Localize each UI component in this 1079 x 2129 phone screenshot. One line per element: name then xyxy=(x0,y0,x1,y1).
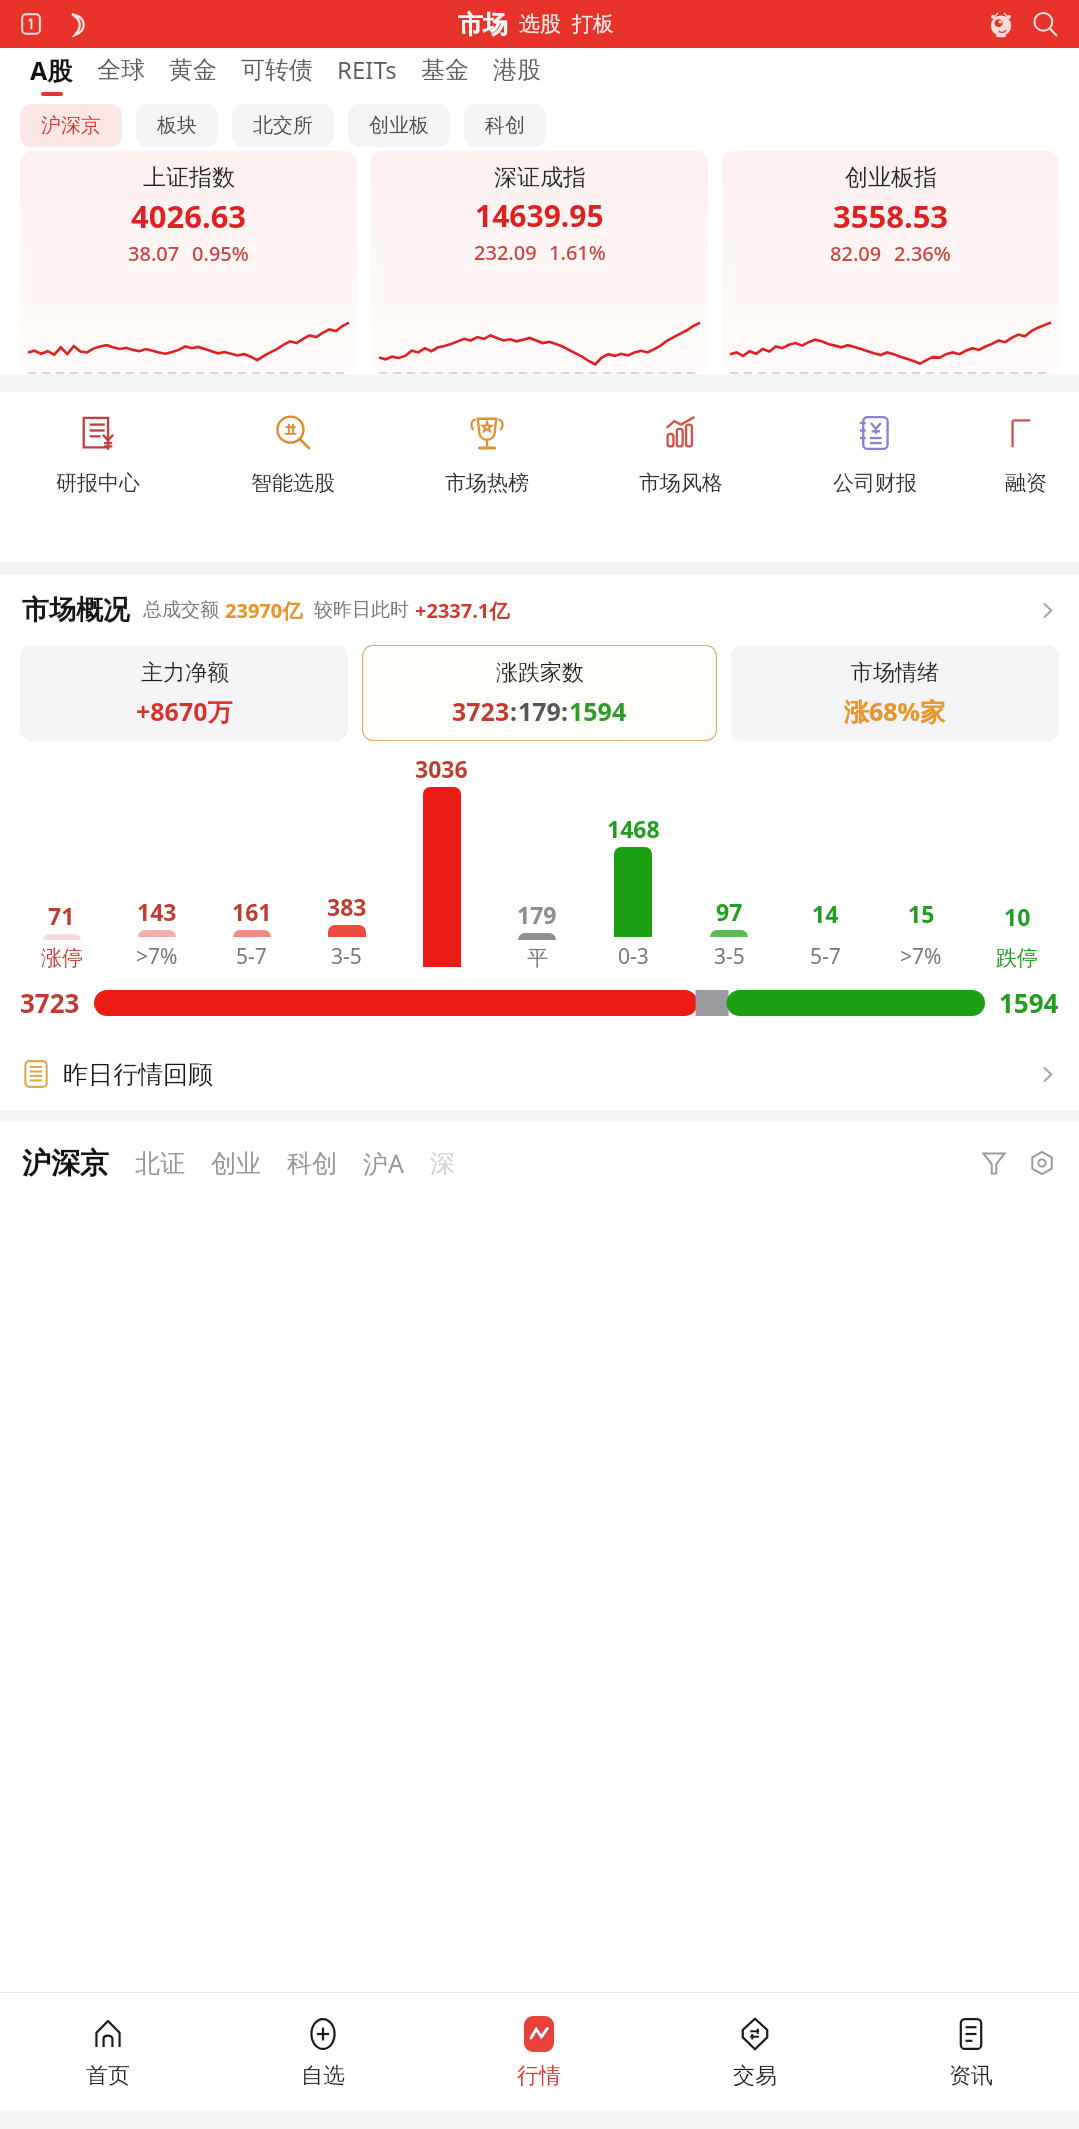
staticText: 公司财报 xyxy=(833,470,917,496)
staticText: 82.09 xyxy=(830,240,882,267)
staticText: 10 xyxy=(1004,901,1031,932)
staticText: >7% xyxy=(136,942,178,971)
staticText: 全球 xyxy=(97,55,145,85)
button[interactable]: 北证 xyxy=(135,1148,185,1179)
staticText: 179 xyxy=(517,899,557,930)
button[interactable]: 智能选股 xyxy=(195,410,390,496)
button[interactable]: 市场 xyxy=(458,9,508,40)
staticText: REITs xyxy=(337,53,397,86)
button[interactable]: 板块 xyxy=(136,104,218,147)
staticText: 深证成指 xyxy=(494,163,586,192)
staticText: 0-3 xyxy=(618,942,649,971)
button[interactable]: 沪深京 xyxy=(22,1145,109,1182)
button[interactable]: 基金 xyxy=(409,55,481,94)
staticText: 创业板指 xyxy=(845,163,937,192)
staticText: 71 xyxy=(48,900,75,931)
button[interactable]: 研报中心 xyxy=(0,410,195,496)
button[interactable]: 深 xyxy=(430,1148,455,1179)
staticText: : xyxy=(561,694,569,728)
staticText: 179 xyxy=(518,694,561,728)
button[interactable]: 科创 xyxy=(287,1148,337,1179)
staticText: 北交所 xyxy=(253,113,313,138)
button[interactable]: 深证成指 xyxy=(371,151,708,375)
staticText: 15 xyxy=(908,898,935,929)
staticText: 可转债 xyxy=(241,55,313,85)
staticText: 5-7 xyxy=(236,942,267,971)
staticText: 1.61% xyxy=(549,239,606,266)
staticText: 1468 xyxy=(607,813,660,844)
button[interactable]: 首页 xyxy=(0,1993,215,2111)
staticText: 上证指数 xyxy=(143,163,235,192)
staticText: 基金 xyxy=(421,55,469,85)
button[interactable]: 行情 xyxy=(431,1993,647,2111)
button[interactable]: Assistant xyxy=(981,4,1021,44)
button[interactable]: 主力净额 xyxy=(20,645,348,741)
staticText: >7% xyxy=(900,942,942,971)
button[interactable]: Level 1 quote xyxy=(14,7,48,41)
button[interactable]: Search xyxy=(1025,4,1065,44)
staticText: 97 xyxy=(716,896,743,927)
staticText: 市场情绪 xyxy=(851,659,939,687)
button[interactable]: 科创 xyxy=(464,104,546,147)
button[interactable]: 沪深京 xyxy=(20,104,122,147)
button[interactable]: 资讯 xyxy=(863,1993,1079,2111)
button[interactable]: Night mode xyxy=(58,7,92,41)
staticText: 主力净额 xyxy=(141,659,229,687)
button[interactable]: A股 xyxy=(18,53,85,96)
button[interactable]: 沪A xyxy=(363,1146,404,1180)
button[interactable]: Filter xyxy=(973,1142,1015,1184)
staticText: 跌停 xyxy=(996,945,1038,971)
button[interactable]: 融资 xyxy=(972,410,1079,496)
staticText: 3558.53 xyxy=(833,195,949,237)
staticText: 涨68%家 xyxy=(844,694,946,728)
staticText: 0.95% xyxy=(192,240,249,267)
button[interactable]: 全球 xyxy=(85,55,157,94)
staticText: 14639.95 xyxy=(475,195,604,236)
staticText: 首页 xyxy=(86,2062,130,2090)
button[interactable]: 市场情绪 xyxy=(731,645,1059,741)
staticText: 港股 xyxy=(493,55,541,85)
button[interactable]: Settings xyxy=(1021,1142,1063,1184)
staticText: 研报中心 xyxy=(56,470,140,496)
button[interactable]: 公司财报 xyxy=(778,410,972,496)
button[interactable]: 市场风格 xyxy=(584,410,778,496)
staticText: 5-7 xyxy=(810,942,841,971)
staticText: 市场热榜 xyxy=(445,470,529,496)
staticText: 1594 xyxy=(569,694,627,728)
staticText: 科创 xyxy=(485,113,525,138)
staticText: 2.36% xyxy=(894,240,951,267)
staticText: 3-5 xyxy=(714,942,745,971)
staticText: 3-5 xyxy=(331,942,362,971)
button[interactable]: 打板 xyxy=(572,11,614,37)
button[interactable]: 港股 xyxy=(481,55,553,94)
staticText: 行情 xyxy=(517,2062,561,2090)
staticText: 161 xyxy=(232,896,272,927)
staticText: 自选 xyxy=(301,2062,345,2090)
button[interactable]: 市场概况 xyxy=(0,575,1079,645)
button[interactable]: 创业板 xyxy=(348,104,450,147)
staticText: 市场概况 xyxy=(22,593,130,627)
staticText: 涨跌家数 xyxy=(496,659,584,687)
staticText: 总成交额 xyxy=(143,598,219,622)
button[interactable]: 涨跌家数 xyxy=(362,645,717,741)
button[interactable]: 自选 xyxy=(215,1993,431,2111)
button[interactable]: 创业板指 xyxy=(722,151,1059,375)
button[interactable]: 市场热榜 xyxy=(390,410,584,496)
button[interactable]: 选股 xyxy=(519,11,561,37)
staticText: 市场风格 xyxy=(639,470,723,496)
staticText: 智能选股 xyxy=(251,470,335,496)
button[interactable]: 昨日行情回顾 xyxy=(0,1038,1079,1110)
staticText: 创业板 xyxy=(369,113,429,138)
button[interactable]: 北交所 xyxy=(232,104,334,147)
button[interactable]: 创业 xyxy=(211,1148,261,1179)
button[interactable]: 黄金 xyxy=(157,55,229,94)
staticText: +2337.1亿 xyxy=(415,597,510,624)
button[interactable]: 交易 xyxy=(647,1993,863,2111)
button[interactable]: 可转债 xyxy=(229,55,325,94)
staticText: 23970亿 xyxy=(225,597,303,624)
staticText: +8670万 xyxy=(136,694,233,728)
button[interactable]: REITs xyxy=(325,53,409,95)
staticText: 14 xyxy=(812,898,839,929)
staticText: 较昨日此时 xyxy=(314,598,409,622)
button[interactable]: 上证指数 xyxy=(20,151,357,375)
